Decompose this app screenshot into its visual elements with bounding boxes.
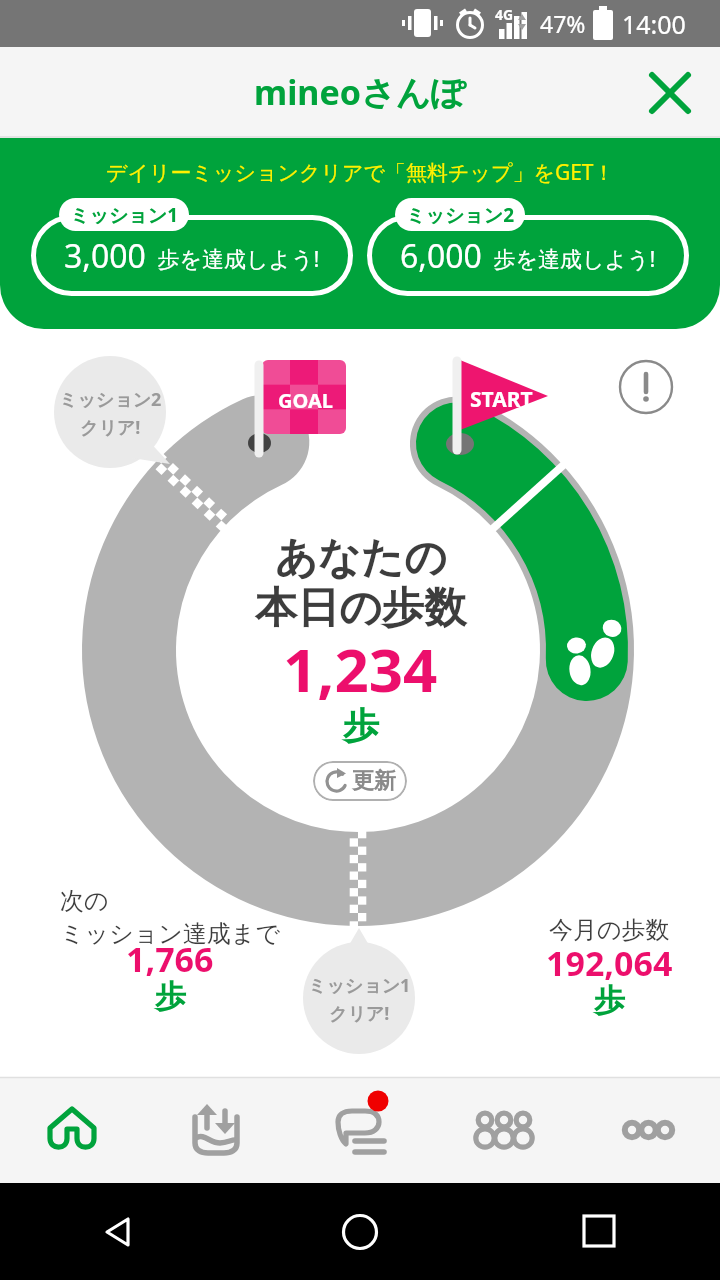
staticText: 歩を達成しよう!: [482, 243, 656, 273]
staticText: ミッション1: [308, 973, 411, 998]
button[interactable]: Community: [432, 1077, 576, 1183]
button[interactable]: Back: [0, 1183, 240, 1280]
staticText: 歩: [594, 981, 625, 1020]
staticText: 192,064: [546, 940, 673, 986]
staticText: 4G: [495, 5, 514, 24]
staticText: 歩: [343, 703, 379, 748]
button[interactable]: 3,000: [31, 198, 353, 296]
button[interactable]: Home: [0, 1077, 144, 1183]
staticText: ミッション2: [406, 202, 515, 228]
button[interactable]: More: [576, 1077, 720, 1183]
staticText: 1,234: [283, 628, 438, 710]
button[interactable]: Recents: [480, 1183, 720, 1280]
button[interactable]: Data: [144, 1077, 288, 1183]
staticText: あなたの: [275, 532, 447, 585]
button[interactable]: 更新: [313, 761, 407, 801]
staticText: ミッション1: [70, 202, 179, 228]
staticText: mineoさんぽ: [254, 69, 466, 115]
staticText: 1,766: [126, 936, 214, 982]
button[interactable]: Home: [240, 1183, 480, 1280]
staticText: クリア!: [80, 415, 141, 440]
staticText: 本日の歩数: [255, 582, 466, 635]
staticText: クリア!: [329, 1001, 390, 1026]
staticText: START: [470, 385, 533, 414]
staticText: 今月の歩数: [549, 915, 670, 945]
staticText: 14:00: [622, 7, 686, 41]
staticText: 47%: [540, 8, 586, 39]
staticText: ミッション達成まで: [60, 919, 280, 949]
staticText: 6,000: [400, 234, 482, 278]
button[interactable]: Close: [640, 63, 700, 123]
button[interactable]: Information: [616, 357, 676, 417]
staticText: 歩を達成しよう!: [146, 243, 320, 273]
staticText: GOAL: [278, 387, 333, 414]
button[interactable]: Messages: [288, 1077, 432, 1183]
staticText: 次の: [60, 886, 109, 916]
button[interactable]: 6,000: [367, 198, 689, 296]
staticText: デイリーミッションクリアで「無料チップ」をGET！: [106, 158, 615, 187]
staticText: 更新: [352, 767, 396, 795]
staticText: 3,000: [64, 234, 146, 278]
staticText: ミッション2: [59, 387, 162, 412]
staticText: 歩: [155, 977, 186, 1016]
